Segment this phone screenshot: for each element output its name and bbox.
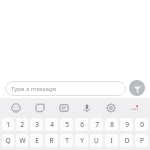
staticText: 7: [95, 120, 99, 129]
staticText: 4: [50, 120, 54, 129]
staticText: I: [110, 136, 113, 145]
button[interactable]: T: [60, 134, 73, 147]
staticText: R: [49, 136, 54, 145]
button[interactable]: I: [105, 134, 118, 147]
button[interactable]: Q: [2, 134, 14, 147]
staticText: O: [124, 136, 130, 145]
button[interactable]: Y: [75, 134, 88, 147]
button[interactable]: Settings: [102, 99, 119, 116]
button[interactable]: R: [45, 134, 58, 147]
button[interactable]: Send: [129, 80, 145, 96]
button[interactable]: 1: [2, 118, 14, 131]
staticText: 6: [80, 120, 84, 129]
staticText: P: [140, 136, 144, 145]
staticText: Type a message: [11, 85, 57, 93]
button[interactable]: Type a message: [5, 81, 126, 96]
button[interactable]: 5: [60, 118, 73, 131]
button[interactable]: E: [30, 134, 43, 147]
staticText: 3: [35, 120, 39, 129]
staticText: 9: [125, 120, 129, 129]
button[interactable]: U: [90, 134, 103, 147]
staticText: 0: [140, 120, 144, 129]
button[interactable]: 9: [120, 118, 133, 131]
staticText: U: [94, 136, 99, 145]
button[interactable]: 2: [16, 118, 28, 131]
button[interactable]: O: [120, 134, 133, 147]
button[interactable]: Emoji: [7, 99, 24, 116]
button[interactable]: More options: [126, 99, 143, 116]
button[interactable]: W: [16, 134, 28, 147]
button[interactable]: 3: [30, 118, 43, 131]
button[interactable]: 7: [90, 118, 103, 131]
staticText: Q: [5, 136, 11, 145]
button[interactable]: 4: [45, 118, 58, 131]
staticText: T: [65, 136, 69, 145]
button[interactable]: GIF: [55, 99, 72, 116]
button[interactable]: Voice input: [78, 99, 95, 116]
button[interactable]: 6: [75, 118, 88, 131]
staticText: E: [35, 136, 39, 145]
button[interactable]: Stickers: [31, 99, 48, 116]
button[interactable]: 8: [105, 118, 118, 131]
staticText: W: [19, 136, 26, 145]
button[interactable]: P: [135, 134, 148, 147]
button[interactable]: 0: [135, 118, 148, 131]
staticText: 1: [6, 120, 10, 129]
staticText: Y: [80, 136, 84, 145]
staticText: 5: [65, 120, 69, 129]
staticText: 8: [110, 120, 114, 129]
staticText: 2: [20, 120, 24, 129]
